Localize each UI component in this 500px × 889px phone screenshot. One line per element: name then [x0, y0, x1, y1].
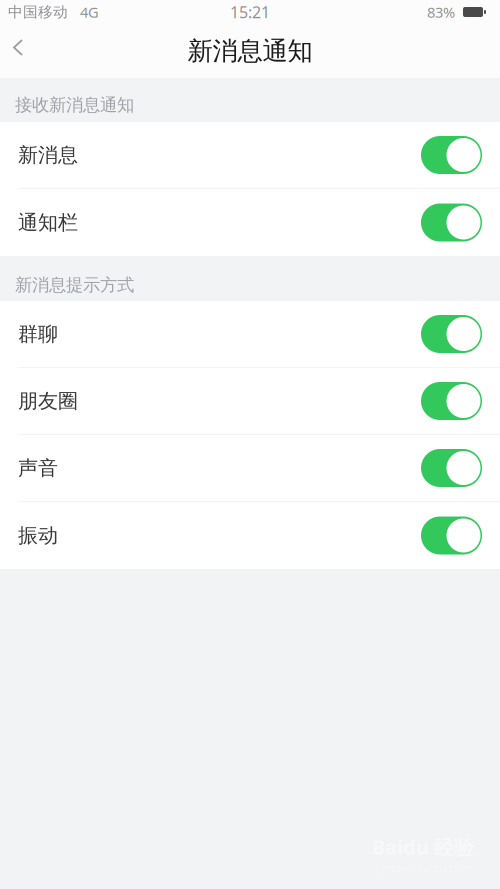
staticText: 83% — [427, 2, 463, 22]
button[interactable]: 振动 — [0, 502, 500, 569]
staticText: 4G — [68, 2, 99, 22]
button[interactable]: 群聊 — [0, 301, 500, 368]
staticText: 振动 — [18, 523, 58, 548]
staticText: 新消息 — [18, 142, 78, 168]
button[interactable]: 通知栏 — [0, 189, 500, 256]
button[interactable]: 朋友圈 — [0, 368, 500, 435]
button[interactable]: Back — [0, 29, 36, 65]
button[interactable]: 声音 — [0, 435, 500, 502]
staticText: 中国移动 — [8, 3, 68, 21]
staticText: 通知栏 — [18, 210, 78, 235]
staticText: 接收新消息通知 — [15, 94, 134, 116]
staticText: 群聊 — [18, 321, 58, 347]
button[interactable]: 新消息 — [0, 122, 500, 189]
staticText: 朋友圈 — [18, 388, 78, 414]
staticText: 新消息提示方式 — [15, 274, 134, 296]
staticText: 声音 — [18, 455, 58, 481]
staticText: 新消息通知 — [187, 35, 312, 67]
staticText: 15:21 — [230, 1, 270, 23]
